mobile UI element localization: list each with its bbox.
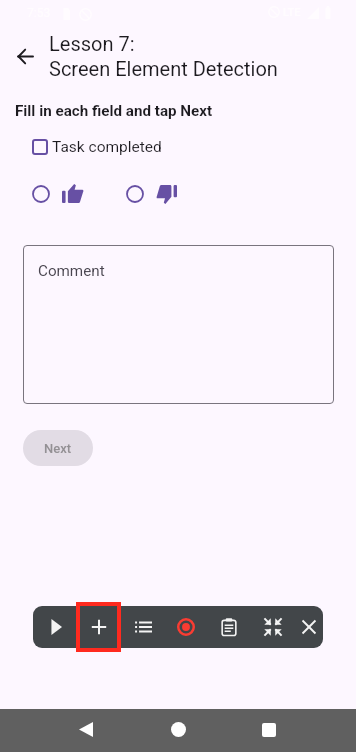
button[interactable]: Task completed xyxy=(32,136,162,158)
staticText: Screen Element Detection xyxy=(49,57,278,80)
button[interactable]: Close xyxy=(292,606,323,648)
button[interactable]: Play xyxy=(40,606,74,648)
button[interactable]: Thumbs down option xyxy=(122,181,148,207)
button[interactable]: Next xyxy=(23,430,93,466)
button[interactable]: Back xyxy=(3,34,47,78)
staticText: Lesson 7: xyxy=(49,32,135,55)
button[interactable]: Clipboard xyxy=(212,606,246,648)
staticText: Comment xyxy=(38,262,105,280)
button[interactable]: Add xyxy=(82,606,116,648)
staticText: Next xyxy=(44,441,72,456)
staticText: Fill in each field and tap Next xyxy=(15,102,213,120)
button[interactable]: Thumbs up xyxy=(62,184,83,203)
button[interactable]: Record xyxy=(169,606,203,648)
button[interactable]: Recent apps xyxy=(249,708,289,751)
button[interactable]: Back xyxy=(66,708,106,751)
button[interactable]: Collapse xyxy=(256,606,290,648)
button[interactable]: Thumbs down xyxy=(157,185,177,204)
button[interactable]: Thumbs up option xyxy=(28,181,54,207)
button[interactable]: Comment xyxy=(23,245,334,404)
staticText: Task completed xyxy=(52,138,162,156)
button[interactable]: List xyxy=(126,606,160,648)
button[interactable]: Home xyxy=(158,708,198,751)
